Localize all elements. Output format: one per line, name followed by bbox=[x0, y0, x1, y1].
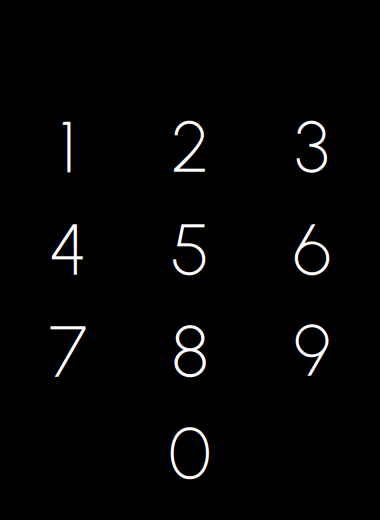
staticText: 4 bbox=[49, 206, 87, 292]
staticText: 9 bbox=[293, 308, 330, 394]
staticText: 2 bbox=[171, 103, 209, 190]
staticText: 0 bbox=[168, 410, 211, 496]
staticText: 5 bbox=[170, 206, 209, 292]
staticText: 3 bbox=[294, 103, 329, 190]
staticText: 6 bbox=[293, 206, 331, 292]
staticText: 7 bbox=[49, 308, 87, 394]
staticText: 1 bbox=[59, 103, 76, 190]
staticText: 8 bbox=[171, 308, 208, 394]
